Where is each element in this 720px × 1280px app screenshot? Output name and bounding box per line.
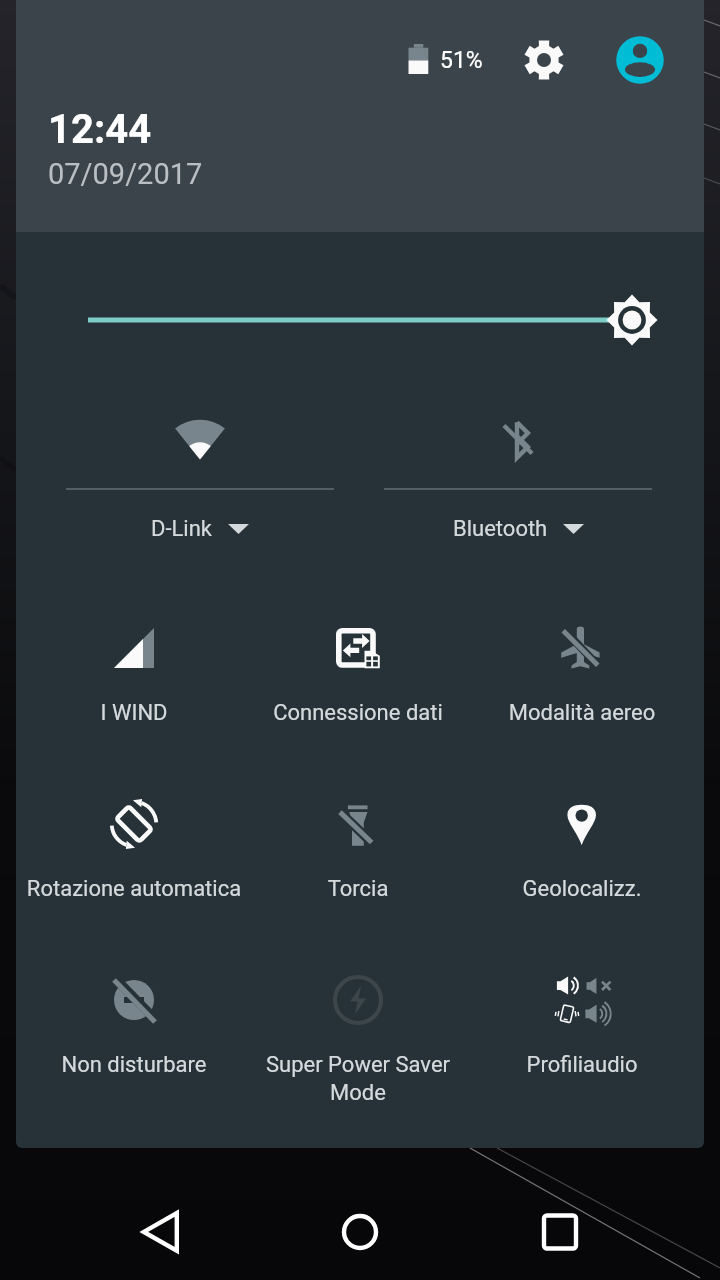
- button[interactable]: Geolocalizz.: [474, 776, 690, 926]
- button[interactable]: Back: [120, 1184, 200, 1280]
- staticText: Connessione dati: [250, 700, 466, 726]
- button[interactable]: Home: [320, 1184, 400, 1280]
- button[interactable]: Torcia: [250, 776, 466, 926]
- staticText: 12:44: [48, 106, 152, 153]
- button[interactable]: Profiliaudio: [474, 952, 690, 1102]
- button[interactable]: D-Link: [66, 380, 334, 540]
- staticText: 07/09/2017: [48, 157, 203, 191]
- staticText: Geolocalizz.: [474, 876, 690, 902]
- button[interactable]: Super Power Saver Mode: [250, 952, 466, 1102]
- staticText: 51%: [440, 47, 483, 74]
- staticText: Super Power Saver Mode: [250, 1052, 466, 1106]
- staticText: Modalità aereo: [474, 700, 690, 726]
- button[interactable]: Settings: [514, 30, 574, 90]
- button[interactable]: Bluetooth: [384, 380, 652, 540]
- button[interactable]: Rotazione automatica: [26, 776, 242, 926]
- button[interactable]: Non disturbare: [26, 952, 242, 1102]
- staticText: Torcia: [250, 876, 466, 902]
- staticText: Profiliaudio: [474, 1052, 690, 1078]
- button[interactable]: Recents: [520, 1184, 600, 1280]
- staticText: Non disturbare: [26, 1052, 242, 1078]
- staticText: Bluetooth: [453, 516, 548, 542]
- button[interactable]: Connessione dati: [250, 600, 466, 750]
- button[interactable]: User profile: [610, 30, 670, 90]
- button[interactable]: Modalità aereo: [474, 600, 690, 750]
- staticText: Rotazione automatica: [26, 876, 242, 902]
- staticText: I WIND: [26, 700, 242, 726]
- staticText: D-Link: [151, 516, 213, 542]
- button[interactable]: I WIND: [26, 600, 242, 750]
